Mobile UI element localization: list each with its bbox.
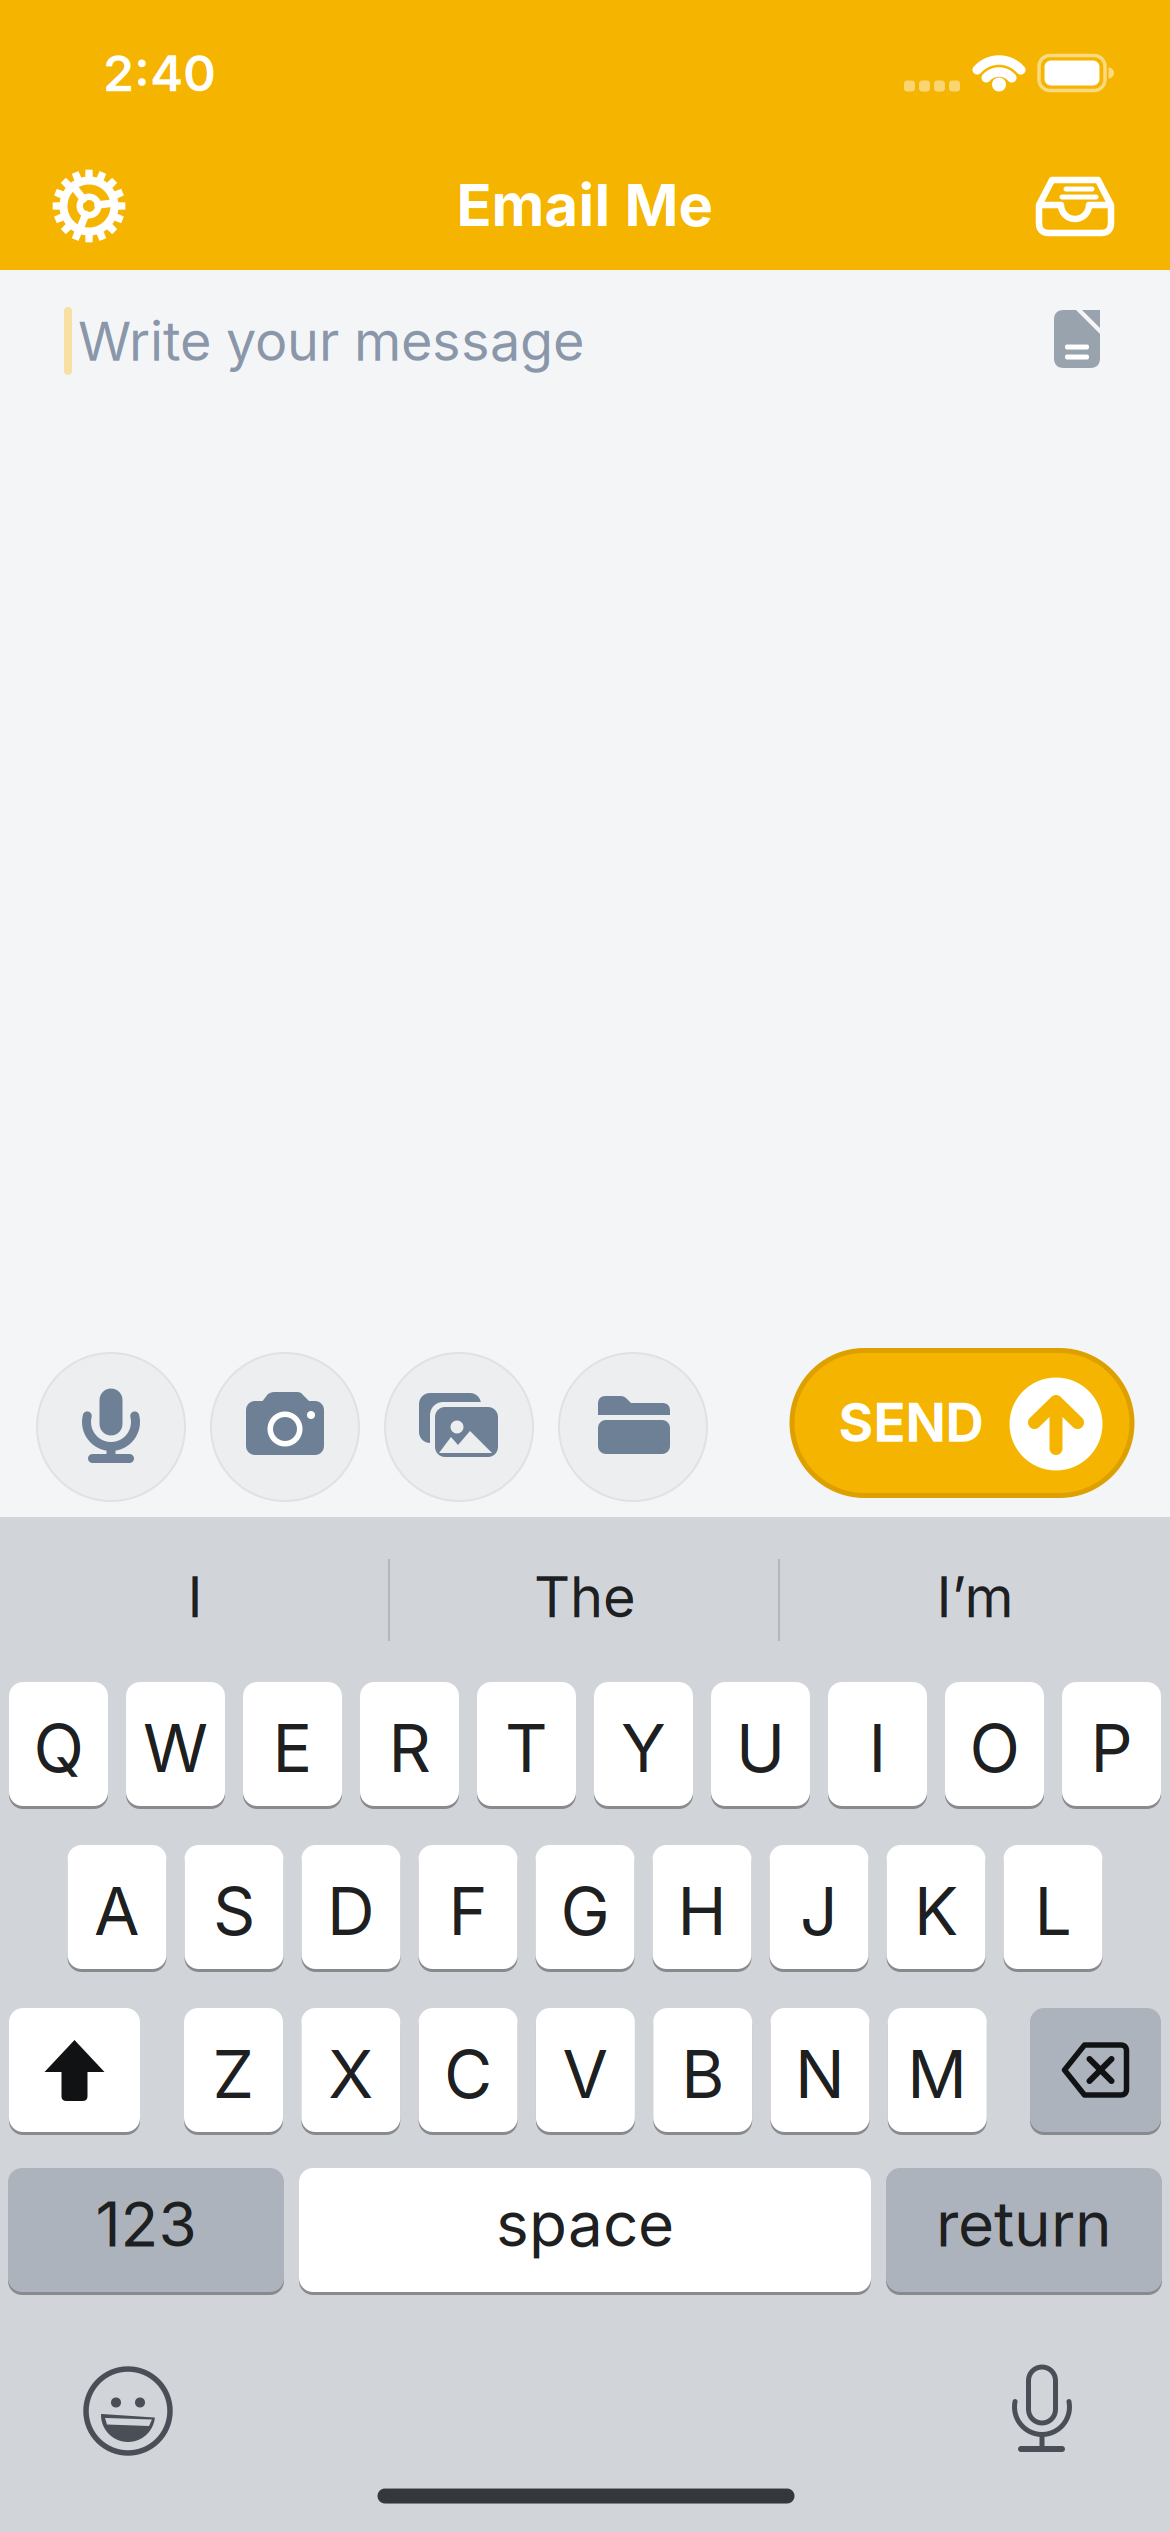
button[interactable]: SEND xyxy=(792,1350,1132,1495)
staticText: M xyxy=(907,2034,967,2114)
button[interactable] xyxy=(49,166,129,246)
staticText: V xyxy=(562,2034,608,2114)
button[interactable]: S xyxy=(184,1843,283,1970)
staticText: Q xyxy=(33,1708,83,1788)
button[interactable] xyxy=(86,2369,170,2453)
staticText: S xyxy=(213,1871,255,1951)
button[interactable]: F xyxy=(418,1843,517,1970)
button[interactable]: N xyxy=(770,2006,869,2133)
staticText: B xyxy=(681,2034,724,2114)
button[interactable] xyxy=(9,2006,140,2133)
staticText: U xyxy=(736,1708,785,1788)
staticText: space xyxy=(496,2186,674,2261)
staticText: SEND xyxy=(838,1390,983,1454)
button[interactable] xyxy=(1054,310,1100,368)
staticText: I xyxy=(868,1708,886,1788)
staticText: Email Me xyxy=(456,170,713,240)
button[interactable] xyxy=(1030,2006,1161,2133)
button[interactable]: O xyxy=(945,1680,1044,1807)
button[interactable]: Y xyxy=(594,1680,693,1807)
staticText: J xyxy=(800,1871,838,1951)
button[interactable]: K xyxy=(886,1843,985,1970)
button[interactable]: G xyxy=(535,1843,634,1970)
staticText: P xyxy=(1090,1708,1132,1788)
button[interactable]: The xyxy=(395,1545,775,1655)
button[interactable] xyxy=(211,1353,359,1501)
button[interactable]: Z xyxy=(184,2006,283,2133)
staticText: I’m xyxy=(936,1563,1013,1631)
button[interactable]: C xyxy=(419,2006,518,2133)
button[interactable] xyxy=(1036,175,1114,237)
staticText: Y xyxy=(621,1708,666,1788)
staticText: The xyxy=(534,1563,636,1631)
staticText: return xyxy=(936,2186,1112,2261)
button[interactable]: L xyxy=(1003,1843,1102,1970)
button[interactable]: E xyxy=(243,1680,342,1807)
staticText: 2:40 xyxy=(103,43,216,103)
staticText: L xyxy=(1034,1871,1071,1951)
button[interactable]: Q xyxy=(9,1680,108,1807)
staticText: A xyxy=(94,1871,140,1951)
staticText: G xyxy=(560,1871,609,1951)
staticText: K xyxy=(914,1871,958,1951)
button[interactable]: space xyxy=(299,2166,871,2293)
button[interactable]: P xyxy=(1062,1680,1161,1807)
staticText: R xyxy=(388,1708,430,1788)
button[interactable]: I xyxy=(5,1545,385,1655)
button[interactable]: J xyxy=(769,1843,868,1970)
staticText: H xyxy=(677,1871,726,1951)
button[interactable]: M xyxy=(888,2006,987,2133)
button[interactable]: R xyxy=(360,1680,459,1807)
button[interactable]: H xyxy=(652,1843,751,1970)
button[interactable]: 123 xyxy=(8,2166,284,2293)
button[interactable]: A xyxy=(67,1843,166,1970)
button[interactable]: U xyxy=(711,1680,810,1807)
staticText: O xyxy=(969,1708,1019,1788)
staticText: 123 xyxy=(95,2186,196,2261)
button[interactable] xyxy=(37,1353,185,1501)
staticText: T xyxy=(505,1708,548,1788)
staticText: Z xyxy=(212,2034,254,2114)
staticText: C xyxy=(444,2034,492,2114)
button[interactable] xyxy=(1000,2364,1084,2454)
staticText: I xyxy=(187,1563,202,1631)
staticText: F xyxy=(448,1871,487,1951)
button[interactable]: V xyxy=(536,2006,635,2133)
staticText: Write your message xyxy=(78,308,584,374)
button[interactable]: I’m xyxy=(785,1545,1165,1655)
button[interactable]: W xyxy=(126,1680,225,1807)
button[interactable]: I xyxy=(828,1680,927,1807)
staticText: N xyxy=(795,2034,845,2114)
button[interactable]: X xyxy=(301,2006,400,2133)
button[interactable] xyxy=(385,1353,533,1501)
staticText: E xyxy=(272,1708,312,1788)
staticText: W xyxy=(143,1708,208,1788)
button[interactable]: D xyxy=(301,1843,400,1970)
staticText: X xyxy=(328,2034,373,2114)
staticText: D xyxy=(327,1871,375,1951)
button[interactable]: T xyxy=(477,1680,576,1807)
button[interactable]: return xyxy=(886,2166,1162,2293)
button[interactable] xyxy=(559,1353,707,1501)
button[interactable]: B xyxy=(653,2006,752,2133)
